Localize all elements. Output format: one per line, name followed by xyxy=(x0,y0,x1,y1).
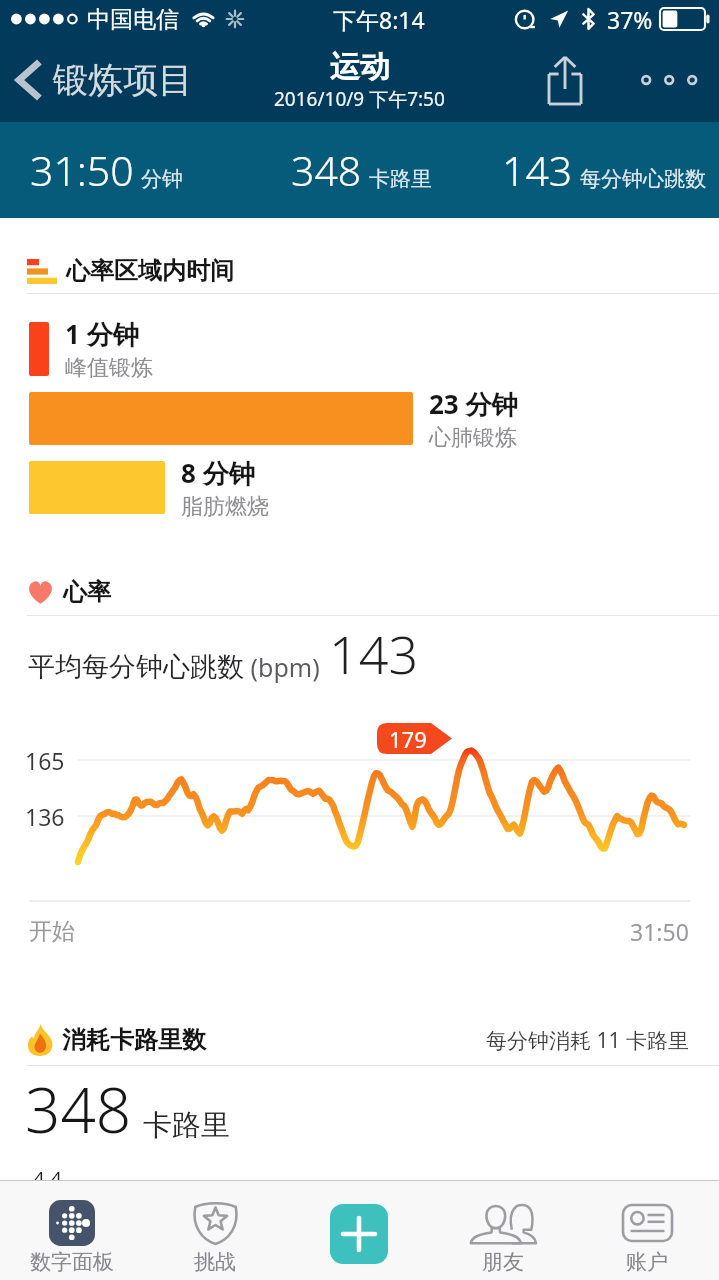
staticText: 348 xyxy=(25,1067,132,1151)
staticText: 136 xyxy=(25,801,65,832)
staticText: 心肺锻炼 xyxy=(429,424,517,452)
staticText: 平均每分钟心跳数 xyxy=(28,650,244,684)
button[interactable]: Share xyxy=(526,38,604,122)
staticText: 账户 xyxy=(626,1249,668,1275)
staticText: 8 分钟 xyxy=(181,455,255,491)
staticText: 每分钟心跳数 xyxy=(580,166,706,192)
staticText: 每分钟消耗 11 卡路里 xyxy=(486,1026,689,1055)
other: Add workout xyxy=(330,1204,388,1264)
staticText: 消耗卡路里数 xyxy=(62,1025,206,1055)
staticText: 2016/10/9 下午7:50 xyxy=(274,86,445,112)
staticText: 中国电信 xyxy=(87,5,179,34)
staticText: 1 分钟 xyxy=(65,316,139,352)
staticText: 44 xyxy=(29,1161,64,1180)
staticText: 31:50 xyxy=(30,142,134,198)
staticText: 348 xyxy=(291,142,362,198)
staticText: 挑战 xyxy=(194,1249,236,1275)
button[interactable]: 挑战 xyxy=(143,1181,287,1280)
staticText: 峰值锻炼 xyxy=(65,354,153,382)
button[interactable]: Add workout xyxy=(287,1181,431,1280)
button[interactable]: 数字面板 xyxy=(0,1181,143,1280)
staticText: 179 xyxy=(389,724,427,754)
staticText: (bpm) xyxy=(244,650,320,684)
staticText: 下午8:14 xyxy=(333,4,425,35)
staticText: 卡路里 xyxy=(143,1107,230,1144)
staticText: 脂肪燃烧 xyxy=(181,493,269,521)
staticText: 心率区域内时间 xyxy=(66,256,234,286)
staticText: 心率 xyxy=(63,577,111,607)
staticText: 143 xyxy=(329,618,419,689)
staticText: 165 xyxy=(25,745,65,776)
staticText: 分钟 xyxy=(141,166,183,192)
staticText: 锻炼项目 xyxy=(53,58,193,102)
staticText: 37% xyxy=(607,4,653,35)
button[interactable]: More options xyxy=(624,38,706,122)
staticText: 开始 xyxy=(29,917,75,946)
staticText: 朋友 xyxy=(482,1249,524,1275)
staticText: 23 分钟 xyxy=(429,386,518,422)
staticText: 数字面板 xyxy=(30,1249,114,1275)
staticText: 运动 xyxy=(330,48,390,86)
staticText: 143 xyxy=(502,142,573,198)
button[interactable]: 朋友 xyxy=(431,1181,575,1280)
staticText: 卡路里 xyxy=(369,166,432,192)
button[interactable]: 账户 xyxy=(575,1181,719,1280)
button[interactable]: 锻炼项目 xyxy=(0,48,205,112)
staticText: 31:50 xyxy=(630,916,689,947)
